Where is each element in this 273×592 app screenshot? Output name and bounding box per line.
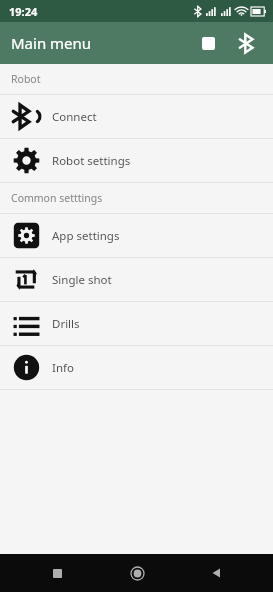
button[interactable]: Home (115, 554, 159, 592)
button[interactable]: App settings (0, 214, 273, 257)
staticText: Drills (52, 316, 80, 332)
button[interactable]: Back (194, 554, 238, 592)
staticText: Robot (11, 72, 41, 86)
button[interactable]: Recents (35, 554, 79, 592)
button[interactable]: Single shot (0, 258, 273, 301)
button[interactable]: Stop (189, 24, 227, 62)
staticText: App settings (52, 228, 120, 244)
staticText: Common setttings (11, 191, 103, 205)
staticText: Info (52, 360, 74, 376)
button[interactable]: Bluetooth (227, 24, 265, 62)
button[interactable]: Connect (0, 95, 273, 138)
staticText: Robot settings (52, 153, 131, 169)
button[interactable]: Drills (0, 302, 273, 345)
staticText: Connect (52, 109, 97, 125)
staticText: Single shot (52, 272, 112, 288)
button[interactable]: Robot settings (0, 139, 273, 182)
staticText: Main menu (11, 33, 92, 53)
staticText: 19:24 (9, 4, 38, 19)
button[interactable]: Info (0, 346, 273, 389)
